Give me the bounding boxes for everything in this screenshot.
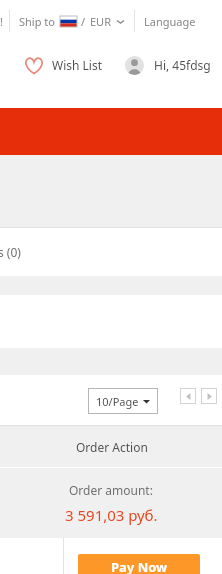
button[interactable]: Next page	[201, 388, 217, 404]
staticText: !	[0, 14, 3, 29]
staticText: Hi, 45fdsg	[154, 57, 211, 73]
button[interactable]: Hi, 45fdsg	[125, 42, 211, 88]
button[interactable]: Previous page	[180, 388, 196, 404]
staticText: 10/Page	[96, 394, 139, 409]
button[interactable]: 10/Page	[88, 388, 158, 414]
staticText: Ship to	[19, 14, 55, 29]
staticText: /	[81, 14, 86, 29]
button[interactable]: Ship to	[19, 0, 125, 42]
button[interactable]: Language	[144, 0, 196, 42]
staticText: Order amount:	[69, 482, 153, 498]
staticText: EUR	[90, 14, 111, 29]
button[interactable]: Wish List	[24, 42, 103, 88]
button[interactable]: !	[0, 0, 9, 42]
staticText: s (0)	[0, 244, 21, 260]
button[interactable]: s (0)	[0, 228, 222, 276]
staticText: Language	[144, 14, 196, 29]
staticText: Order Action	[76, 439, 148, 455]
staticText: 3 591,03 руб.	[65, 505, 158, 525]
staticText: Wish List	[52, 57, 103, 73]
button[interactable]: Pay Now	[78, 554, 200, 574]
staticText: Pay Now	[111, 558, 168, 574]
